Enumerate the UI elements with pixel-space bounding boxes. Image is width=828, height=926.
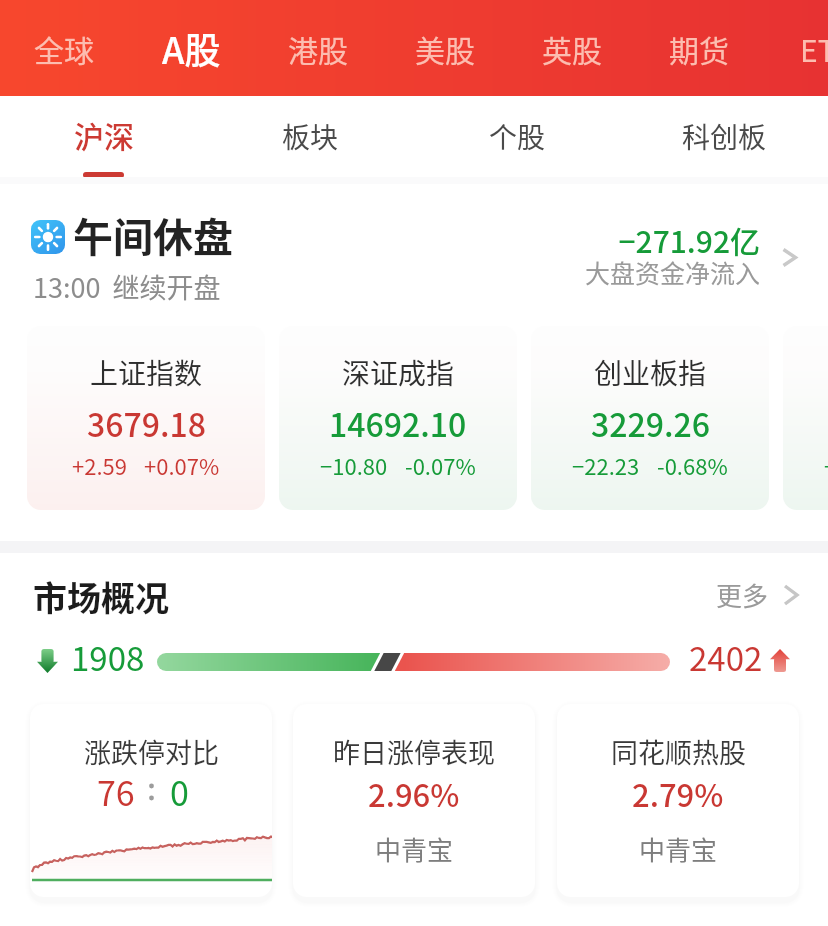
staticText: −11.21 [824,449,828,481]
button[interactable]: A股 [128,0,254,96]
staticText: ETF [800,27,828,70]
staticText: −10.80 [320,449,388,481]
button[interactable]: 全球 [1,0,127,96]
button[interactable]: 同花顺热股 [557,704,799,897]
button[interactable]: 昨日涨停表现 [293,704,535,897]
staticText: -0.68% [657,449,728,481]
staticText: 英股 [542,27,602,70]
staticText: 更多 [716,576,769,614]
staticText: 科创板 [682,116,767,157]
staticText: 3229.26 [591,400,710,446]
button[interactable]: 更多 [716,576,797,614]
button[interactable]: 科创板 [621,96,828,181]
staticText: 全球 [34,27,94,70]
staticText: -0.07% [405,449,476,481]
staticText: 市场概况 [33,572,169,621]
staticText: 中青宝 [639,830,718,868]
button[interactable]: 涨跌停对比 [30,704,272,897]
staticText: 个股 [489,116,546,157]
staticText: +2.59 [72,449,127,481]
button[interactable]: 创业板指 [531,326,769,510]
button[interactable]: 港股 [255,0,381,96]
staticText: 涨跌停对比 [84,732,219,771]
button[interactable]: ETF [763,0,828,96]
staticText: 2402 [689,633,763,681]
other: 资金流向详情 [782,248,797,267]
staticText: 上证指数 [90,352,203,393]
staticText: 14692.10 [329,400,467,446]
staticText: 沪深 [74,113,134,156]
staticText: 大盘资金净流入 [362,254,760,290]
staticText: 午间休盘 [73,206,233,264]
staticText: 2.79% [632,771,724,816]
staticText: 板块 [282,116,339,157]
button[interactable]: 个股 [414,96,621,181]
button[interactable] [0,181,828,290]
staticText: 昨日涨停表现 [333,732,495,771]
staticText: 深证成指 [342,352,455,393]
staticText: 港股 [288,27,348,70]
button[interactable]: 上证指数 [27,326,265,510]
staticText: 3679.18 [87,400,206,446]
button[interactable]: 深证成指 [279,326,517,510]
button[interactable]: 沪深 [0,96,207,181]
staticText: 0 [170,767,189,816]
button[interactable]: 美股 [382,0,508,96]
staticText: 创业板指 [594,352,707,393]
staticText: 中青宝 [375,830,454,868]
button[interactable]: 期货 [636,0,762,96]
staticText: A股 [162,22,221,74]
staticText: 1908 [71,633,145,681]
staticText: −271.92亿 [360,218,760,261]
staticText: 13:00 继续开盘 [33,267,221,306]
button[interactable]: 科创50 [783,326,828,510]
staticText: 2.96% [368,771,460,816]
staticText: 期货 [669,27,729,70]
button[interactable]: 板块 [207,96,414,181]
staticText: +0.07% [144,449,220,481]
button[interactable]: 英股 [509,0,635,96]
staticText: 美股 [415,27,475,70]
staticText: −22.23 [572,449,640,481]
staticText: 同花顺热股 [611,732,746,771]
staticText: 76 [97,767,135,816]
